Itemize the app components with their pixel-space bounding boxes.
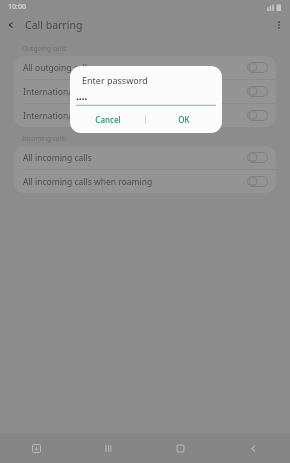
button[interactable]: Back	[0, 14, 22, 36]
staticText: All incoming calls when roaming	[23, 176, 247, 188]
staticText: OK	[178, 114, 190, 125]
staticText: Incoming calls	[22, 134, 66, 143]
staticText: International calls	[23, 86, 247, 98]
staticText: Enter password	[82, 74, 148, 86]
button[interactable]: All outgoing calls	[14, 56, 276, 79]
staticText: Cancel	[95, 114, 121, 125]
button[interactable]: International calls except to home count…	[14, 104, 276, 127]
button[interactable]: All incoming calls	[14, 146, 276, 169]
staticText: All incoming calls	[23, 152, 247, 164]
button[interactable]: Toggle	[247, 152, 268, 163]
button[interactable]: Recents	[72, 433, 144, 463]
button[interactable]: Hide keyboard	[0, 433, 72, 463]
staticText: 10:00	[8, 2, 26, 12]
button[interactable]: Toggle	[247, 62, 268, 73]
button[interactable]: Home	[144, 433, 217, 463]
button[interactable]: Toggle	[247, 176, 268, 187]
button[interactable]: International calls	[14, 80, 276, 103]
button[interactable]: Toggle	[247, 110, 268, 121]
staticText: Call barring	[25, 18, 83, 32]
button[interactable]: All incoming calls when roaming	[14, 170, 276, 193]
button[interactable]: Cancel	[70, 110, 145, 128]
staticText: International calls except to home count…	[23, 110, 247, 122]
staticText: Outgoing calls	[22, 44, 66, 53]
button[interactable]: OK	[146, 110, 222, 128]
button[interactable]: Toggle	[247, 86, 268, 97]
staticText: All outgoing calls	[23, 62, 247, 74]
button[interactable]: More options	[268, 14, 290, 36]
